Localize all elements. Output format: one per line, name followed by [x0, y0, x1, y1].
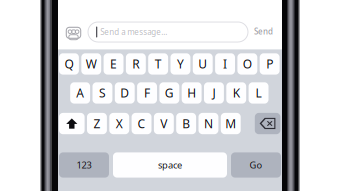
staticText: Send [254, 26, 273, 37]
button[interactable]: M [221, 113, 241, 134]
staticText: space [158, 159, 182, 171]
button[interactable]: H [182, 82, 202, 104]
button[interactable]: R [126, 53, 146, 75]
button[interactable]: U [193, 53, 213, 75]
staticText: C [137, 116, 145, 131]
button[interactable]: Shift [59, 113, 85, 134]
button[interactable]: G [159, 82, 179, 104]
button[interactable]: Send [254, 25, 278, 38]
button[interactable]: F [137, 82, 157, 104]
button[interactable]: Q [59, 53, 79, 75]
staticText: V [160, 116, 167, 131]
button[interactable]: Go [231, 152, 281, 178]
staticText: O [243, 56, 252, 72]
button[interactable]: 123 [59, 152, 109, 178]
button[interactable]: P [260, 53, 280, 75]
staticText: Go [249, 159, 262, 171]
staticText: P [266, 56, 273, 72]
button[interactable]: space [113, 152, 227, 178]
staticText: S [99, 85, 106, 101]
staticText: F [144, 85, 150, 101]
button[interactable]: Z [87, 113, 107, 134]
staticText: A [76, 85, 84, 101]
staticText: E [110, 56, 117, 72]
staticText: K [233, 85, 240, 101]
button[interactable]: Delete [255, 113, 280, 134]
button[interactable]: E [104, 53, 123, 75]
button[interactable]: W [81, 53, 101, 75]
button[interactable]: J [204, 82, 224, 104]
button[interactable]: I [215, 53, 235, 75]
button[interactable]: T [148, 53, 168, 75]
button[interactable]: O [237, 53, 257, 75]
button[interactable]: X [109, 113, 129, 134]
button[interactable]: B [176, 113, 196, 134]
staticText: T [155, 56, 162, 72]
staticText: 123 [76, 159, 91, 171]
staticText: G [165, 85, 174, 101]
button[interactable]: V [154, 113, 174, 134]
staticText: Z [93, 116, 100, 131]
staticText: N [204, 116, 213, 131]
button[interactable]: K [226, 82, 246, 104]
button[interactable]: Y [170, 53, 190, 75]
staticText: W [86, 56, 97, 72]
button[interactable]: S [92, 82, 112, 104]
button[interactable]: A [70, 82, 90, 104]
staticText: L [255, 85, 261, 101]
button[interactable]: N [198, 113, 218, 134]
staticText: Send a message... [100, 27, 167, 37]
staticText: X [116, 116, 123, 131]
button[interactable]: C [132, 113, 151, 134]
staticText: D [120, 85, 129, 101]
staticText: I [223, 56, 227, 72]
staticText: B [182, 116, 190, 131]
staticText: H [187, 85, 196, 101]
button[interactable]: Apps [66, 27, 81, 38]
staticText: Q [64, 56, 73, 72]
staticText: R [132, 56, 139, 72]
button[interactable]: L [249, 82, 268, 104]
staticText: U [198, 56, 207, 72]
staticText: J [212, 85, 215, 101]
button[interactable]: D [115, 82, 135, 104]
button[interactable]: Send a message [88, 22, 248, 42]
staticText: Y [177, 56, 184, 72]
staticText: M [225, 116, 236, 131]
